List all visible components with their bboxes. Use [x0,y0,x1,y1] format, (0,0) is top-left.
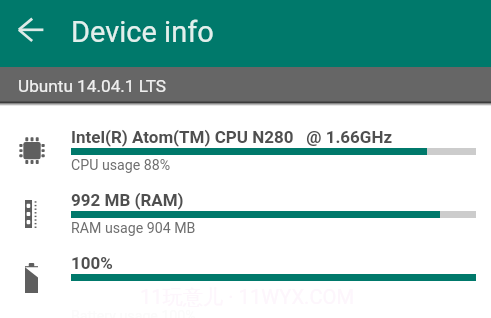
button[interactable]: 100% [0,244,491,307]
button[interactable]: Intel(R) Atom(TM) CPU N280 @ 1.66GHz [0,118,491,181]
staticText: 11玩意儿 · 11WYX.COM [140,285,355,310]
staticText: 992 MB (RAM) [71,190,184,210]
staticText: Intel(R) Atom(TM) CPU N280 @ 1.66GHz [71,127,393,147]
staticText: CPU usage 88% [71,157,171,174]
staticText: RAM usage 904 MB [71,220,196,237]
button: Back [0,0,491,67]
staticText: 100% [71,253,113,273]
staticText: Ubuntu 14.04.1 LTS [18,76,167,96]
button[interactable]: Back [17,16,45,44]
button[interactable]: 992 MB (RAM) [0,181,491,244]
staticText: Device info [71,15,214,49]
